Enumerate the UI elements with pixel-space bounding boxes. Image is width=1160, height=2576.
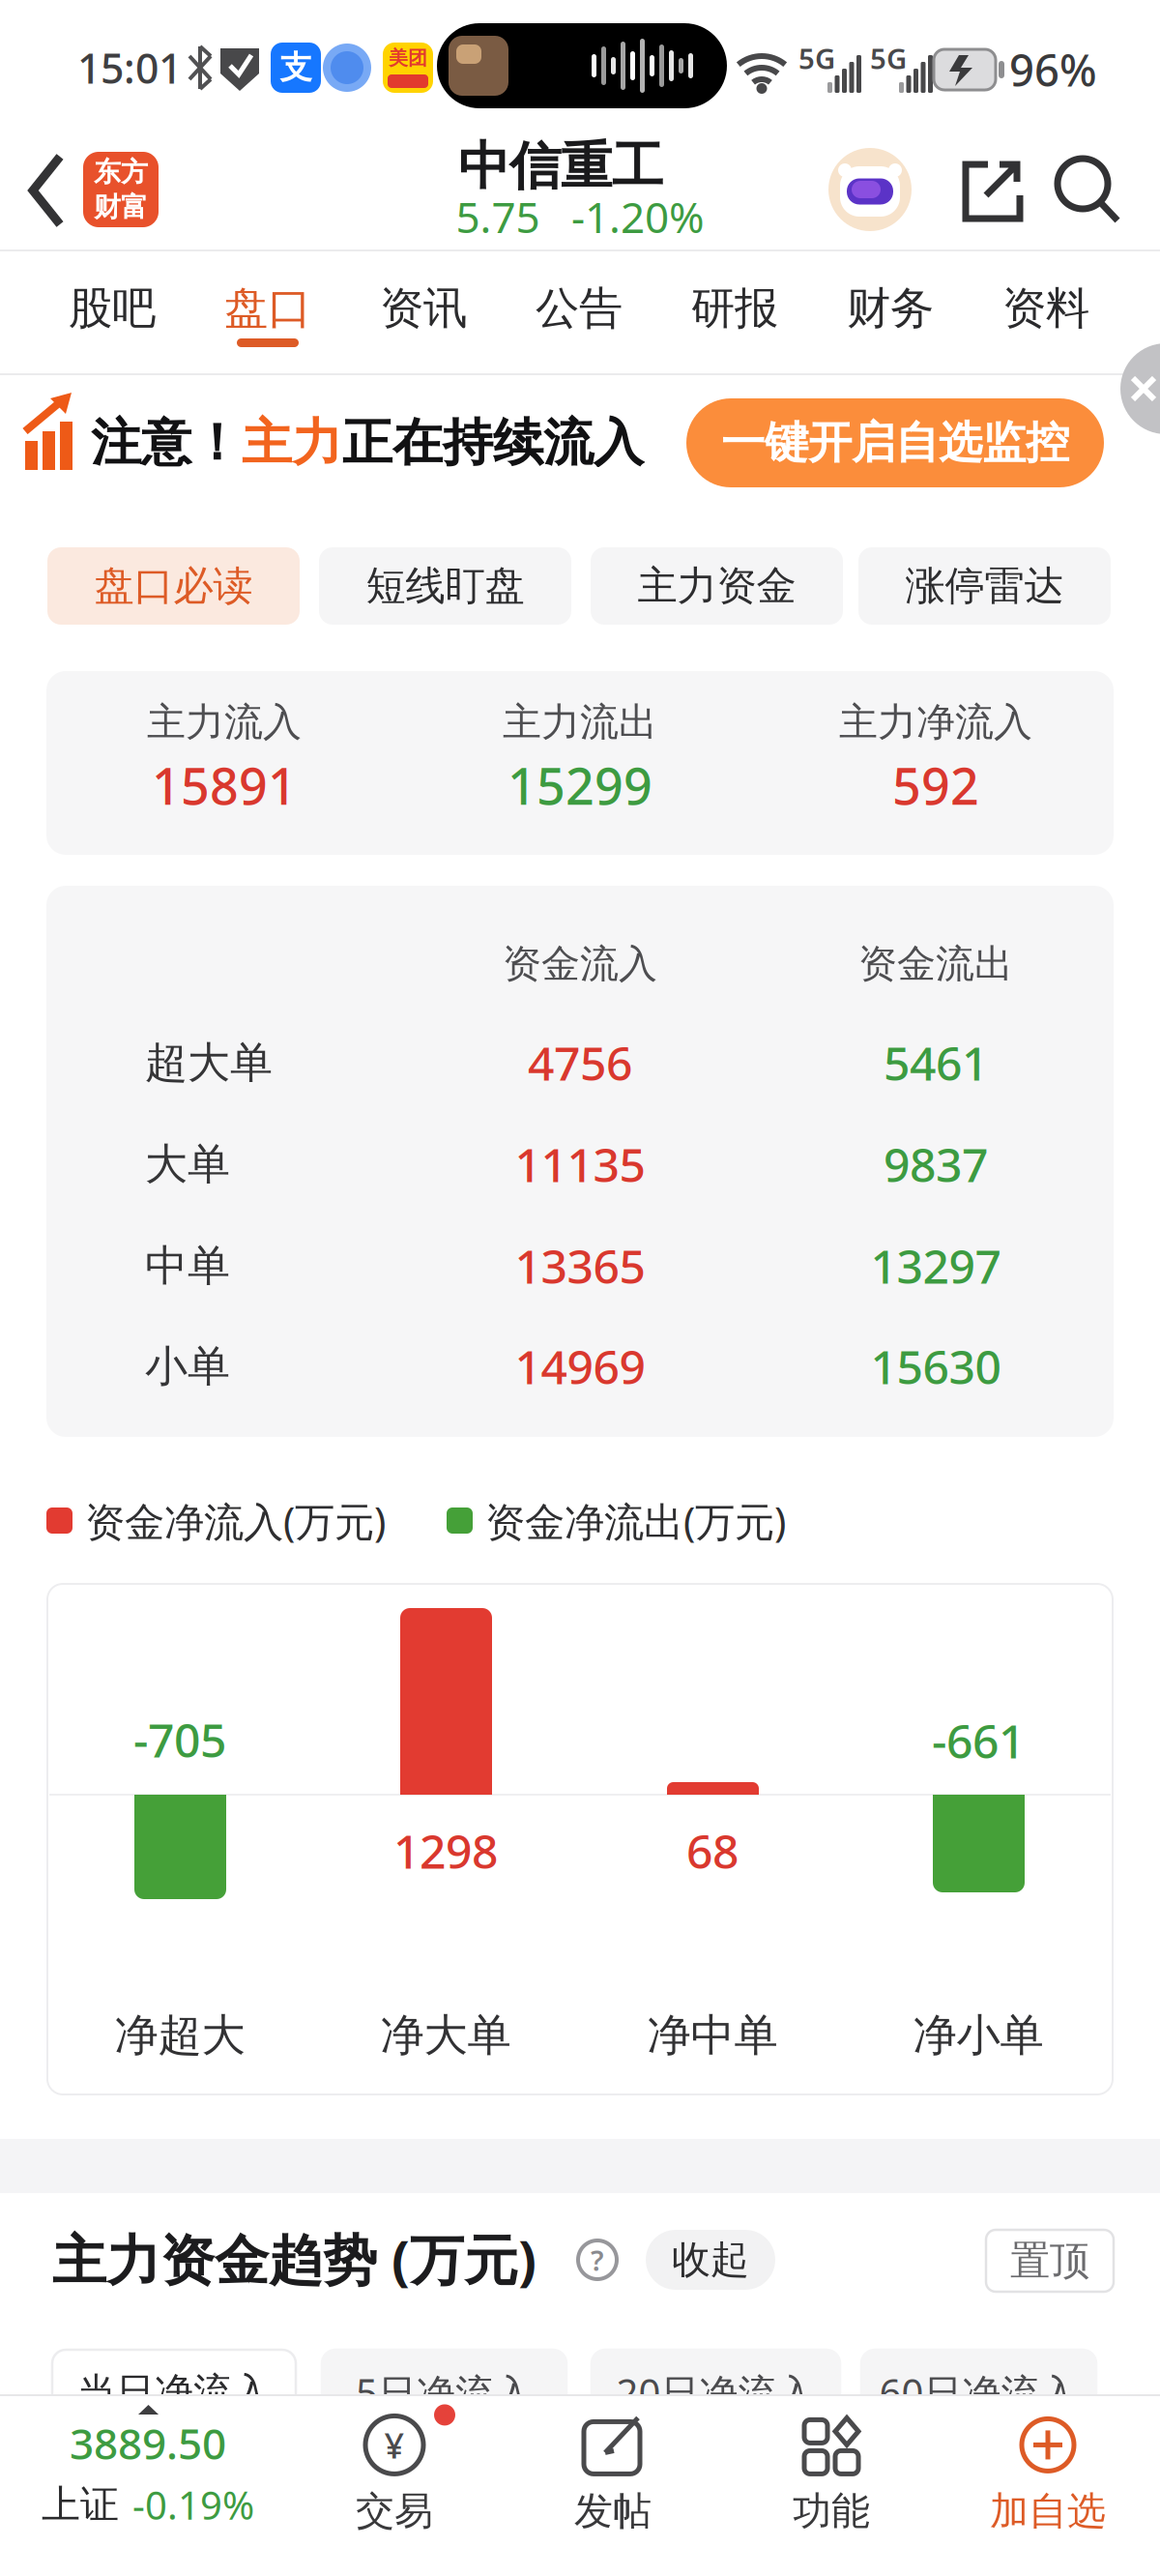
staticText: 5.75 xyxy=(456,188,540,245)
staticText: 主力 xyxy=(242,412,342,474)
staticText: 短线盯盘 xyxy=(366,561,524,611)
staticText: 交易 xyxy=(356,2487,433,2535)
button[interactable]: 5日净流入 xyxy=(322,2350,566,2435)
staticText: 9837 xyxy=(884,1133,988,1195)
button[interactable] xyxy=(1056,157,1121,222)
staticText: 20日净流入 xyxy=(616,2367,815,2418)
staticText: 主力净流入 xyxy=(839,699,1032,746)
staticText: ? xyxy=(591,2241,604,2279)
button[interactable]: 发帖 xyxy=(502,2410,724,2539)
staticText: 主力资金 xyxy=(638,561,796,611)
button[interactable]: 收起 xyxy=(646,2230,775,2290)
staticText: 14969 xyxy=(515,1335,645,1397)
staticText: 13297 xyxy=(870,1235,1001,1297)
staticText: 公告 xyxy=(536,282,623,335)
staticText: 超大单 xyxy=(145,1037,273,1089)
staticText: 置顶 xyxy=(1010,2236,1089,2285)
staticText: 主力资金趋势 (万元) xyxy=(52,2223,536,2295)
staticText: 财务 xyxy=(847,282,934,335)
staticText: -661 xyxy=(932,1710,1025,1771)
staticText: 15891 xyxy=(152,752,297,819)
staticText: 功能 xyxy=(793,2487,870,2535)
staticText: 5G xyxy=(798,39,835,77)
staticText: 支 xyxy=(280,48,312,87)
button[interactable] xyxy=(828,148,912,231)
button[interactable]: 主力资金 xyxy=(591,547,843,625)
staticText: 净小单 xyxy=(913,2009,1044,2062)
staticText: 收起 xyxy=(672,2236,749,2283)
staticText: 小单 xyxy=(145,1340,230,1392)
button[interactable]: 3889.50 xyxy=(0,2417,296,2528)
button[interactable]: 功能 xyxy=(720,2410,942,2539)
button[interactable]: 资料 xyxy=(969,255,1123,362)
button[interactable]: 盘口 xyxy=(190,255,345,362)
staticText: 主力流入 xyxy=(147,699,302,746)
button[interactable]: 置顶 xyxy=(986,2230,1114,2292)
button[interactable]: 资讯 xyxy=(346,255,501,362)
staticText: 5461 xyxy=(884,1032,988,1093)
staticText: 净大单 xyxy=(380,2009,511,2062)
button[interactable]: 股吧 xyxy=(35,255,189,362)
staticText: 15630 xyxy=(870,1335,1001,1397)
staticText: 15299 xyxy=(507,752,652,819)
staticText: 3889.50 xyxy=(70,2415,226,2471)
button[interactable]: 20日净流入 xyxy=(592,2350,840,2435)
staticText: 加自选 xyxy=(990,2487,1106,2535)
staticText: 中信重工 xyxy=(458,135,663,198)
staticText: 注意！ xyxy=(91,412,242,474)
staticText: 96% xyxy=(1009,41,1097,99)
staticText: 13365 xyxy=(515,1235,645,1297)
staticText: 研报 xyxy=(691,282,778,335)
staticText: 资金流出 xyxy=(858,940,1013,988)
staticText: 资金流入 xyxy=(503,940,657,988)
staticText: ¥ xyxy=(384,2422,405,2468)
staticText: 资金净流入(万元) xyxy=(85,1495,386,1548)
staticText: 资料 xyxy=(1002,282,1089,335)
staticText: -0.19% xyxy=(132,2479,254,2530)
staticText: 正在持续流入 xyxy=(342,412,644,474)
button[interactable]: 当日净流入 xyxy=(52,2350,296,2435)
staticText: 净中单 xyxy=(647,2009,778,2062)
staticText: -705 xyxy=(133,1709,226,1770)
staticText: 净超大 xyxy=(115,2009,245,2062)
staticText: 60日净流入 xyxy=(879,2367,1078,2418)
staticText: 11135 xyxy=(515,1133,645,1195)
button[interactable]: 东方 xyxy=(83,152,159,227)
staticText: 15:01 xyxy=(77,40,182,95)
staticText: -1.20% xyxy=(571,188,705,245)
button[interactable]: 研报 xyxy=(657,255,812,362)
staticText: 资讯 xyxy=(380,282,467,335)
staticText: 中单 xyxy=(145,1240,230,1292)
staticText: 盘口 xyxy=(224,282,311,335)
button[interactable]: 财务 xyxy=(813,255,968,362)
staticText: 4756 xyxy=(528,1032,632,1093)
staticText: 一键开启自选监控 xyxy=(721,416,1069,470)
staticText: 财富 xyxy=(94,190,148,224)
staticText: 盘口必读 xyxy=(94,561,253,611)
button[interactable]: 盘口必读 xyxy=(47,547,300,625)
button[interactable] xyxy=(962,161,1024,222)
staticText: 592 xyxy=(892,752,979,819)
button[interactable]: 短线盯盘 xyxy=(319,547,571,625)
staticText: 资金净流出(万元) xyxy=(485,1495,786,1548)
button[interactable]: 公告 xyxy=(502,255,656,362)
staticText: 1298 xyxy=(393,1820,498,1882)
staticText: 上证 xyxy=(42,2481,119,2528)
button[interactable]: ¥ xyxy=(283,2410,506,2539)
staticText: 当日净流入 xyxy=(77,2368,271,2416)
staticText: 68 xyxy=(686,1820,739,1882)
button[interactable]: 涨停雷达 xyxy=(858,547,1111,625)
button[interactable]: 一键开启自选监控 xyxy=(686,398,1104,487)
staticText: 股吧 xyxy=(69,282,156,335)
staticText: 美团 xyxy=(389,46,427,70)
staticText: 5日净流入 xyxy=(356,2367,533,2418)
button[interactable]: 60日净流入 xyxy=(861,2350,1096,2435)
staticText: 大单 xyxy=(145,1138,230,1190)
button[interactable]: 加自选 xyxy=(937,2410,1159,2539)
button[interactable] xyxy=(21,153,75,228)
staticText: 5G xyxy=(870,39,907,77)
staticText: 涨停雷达 xyxy=(905,561,1064,611)
button[interactable] xyxy=(1120,366,1160,434)
staticText: 东方 xyxy=(94,155,148,189)
staticText: 主力流出 xyxy=(503,699,657,746)
